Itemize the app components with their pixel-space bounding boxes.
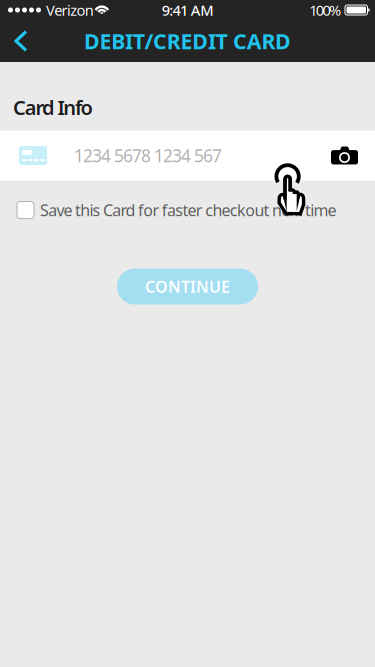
- button[interactable]: CONTINUE: [117, 269, 258, 305]
- staticText: 9:41 AM: [162, 0, 213, 20]
- button[interactable]: Save this Card for faster checkout next …: [0, 181, 375, 240]
- staticText: Card Info: [13, 94, 93, 121]
- staticText: DEBIT/CREDIT CARD: [84, 27, 291, 55]
- button[interactable]: Back: [0, 20, 44, 62]
- staticText: 1234 5678 1234 567: [74, 144, 222, 167]
- button[interactable]: Scan card: [314, 133, 375, 179]
- staticText: 100%: [309, 0, 341, 20]
- staticText: Verizon: [46, 0, 94, 20]
- staticText: CONTINUE: [145, 276, 230, 297]
- staticText: Save this Card for faster checkout next …: [40, 199, 337, 221]
